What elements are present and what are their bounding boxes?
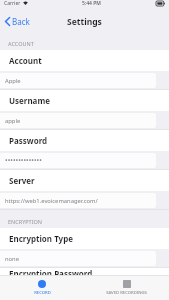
button[interactable]: Apple [0,73,156,88]
staticText: apple [5,117,21,125]
button[interactable]: Username [0,90,169,111]
staticText: Encryption Password [9,268,93,275]
staticText: Server [9,175,35,186]
staticText: Settings [67,16,102,28]
button[interactable]: Encryption Type [0,228,169,249]
button[interactable]: •••••••••••••• [0,153,156,168]
staticText: Password [9,135,48,146]
button[interactable]: SAVED RECORDINGS [84,276,169,300]
staticText: Apple [5,77,21,85]
staticText: none [5,255,19,263]
button[interactable]: Account [0,50,169,71]
staticText: Back [12,16,30,27]
button[interactable]: Encryption Password [0,268,169,275]
button[interactable]: RECORD [0,276,84,300]
staticText: Account [9,55,42,66]
staticText: Encryption Type [9,233,74,244]
staticText: Carrier [4,0,21,7]
staticText: 5:44 PM [82,0,101,7]
staticText: SAVED RECORDINGS [106,290,147,296]
button[interactable]: Password [0,130,169,151]
staticText: https://web1.evoicemanager.com/ [5,197,98,205]
staticText: ACCOUNT [8,40,34,47]
button[interactable]: apple [0,113,156,128]
staticText: •••••••••••••• [5,156,42,166]
button[interactable]: Back [0,13,36,30]
button[interactable]: https://web1.evoicemanager.com/ [0,193,156,208]
staticText: ENCRYPTION [8,218,42,225]
staticText: RECORD [34,290,51,296]
button[interactable]: Server [0,170,169,191]
staticText: Username [9,95,50,106]
button[interactable]: none [0,251,156,266]
